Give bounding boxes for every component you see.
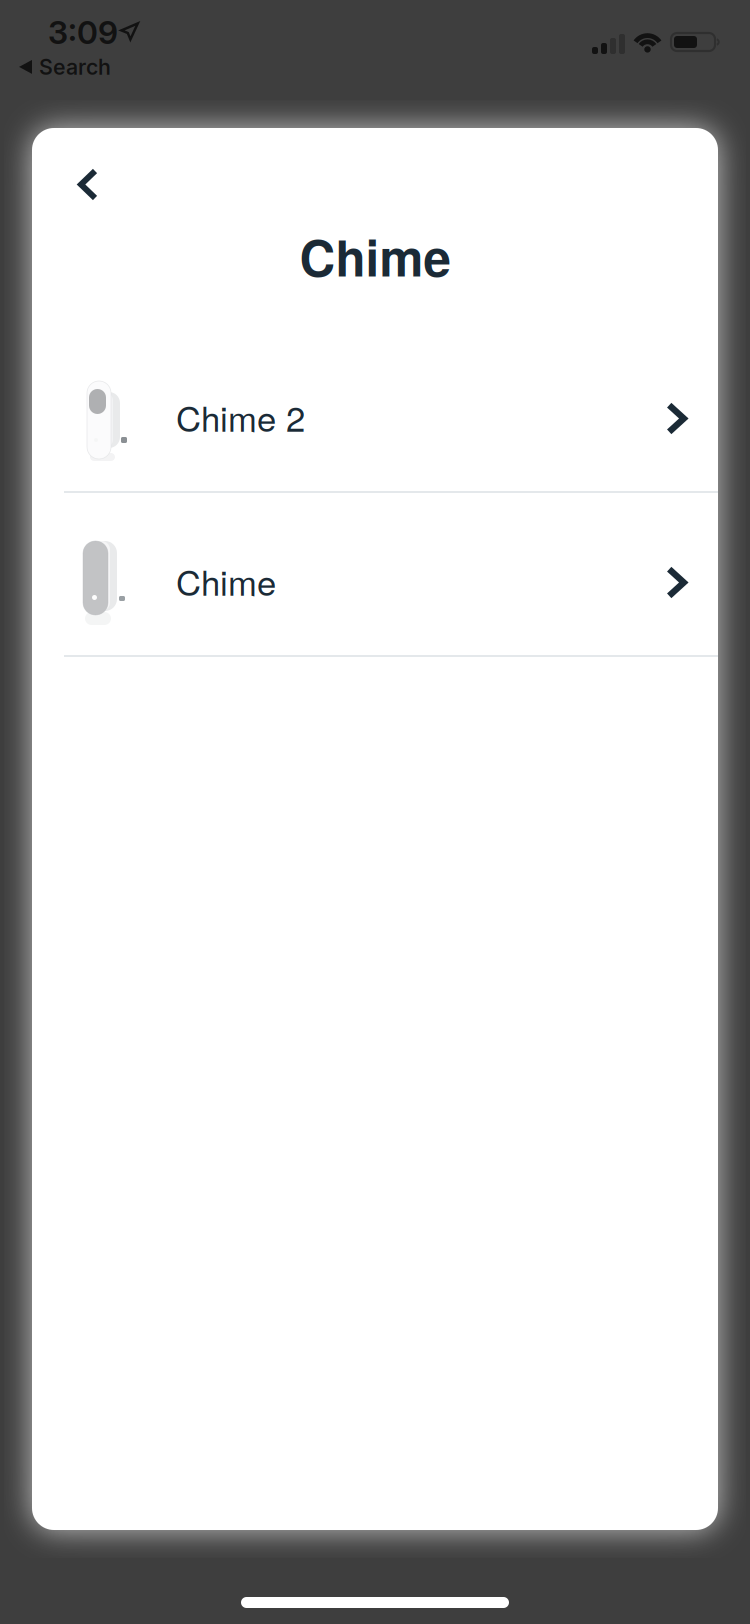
staticText: Chime (299, 221, 450, 292)
button[interactable]: Chime (32, 493, 718, 655)
button[interactable]: Chime 2 (32, 329, 718, 491)
staticText: Chime (176, 556, 276, 606)
staticText: Chime 2 (176, 392, 305, 442)
staticText: Search (39, 54, 111, 80)
staticText: 3:09 (48, 13, 118, 52)
button[interactable]: Search (9, 48, 121, 86)
button[interactable]: Back (52, 146, 124, 223)
